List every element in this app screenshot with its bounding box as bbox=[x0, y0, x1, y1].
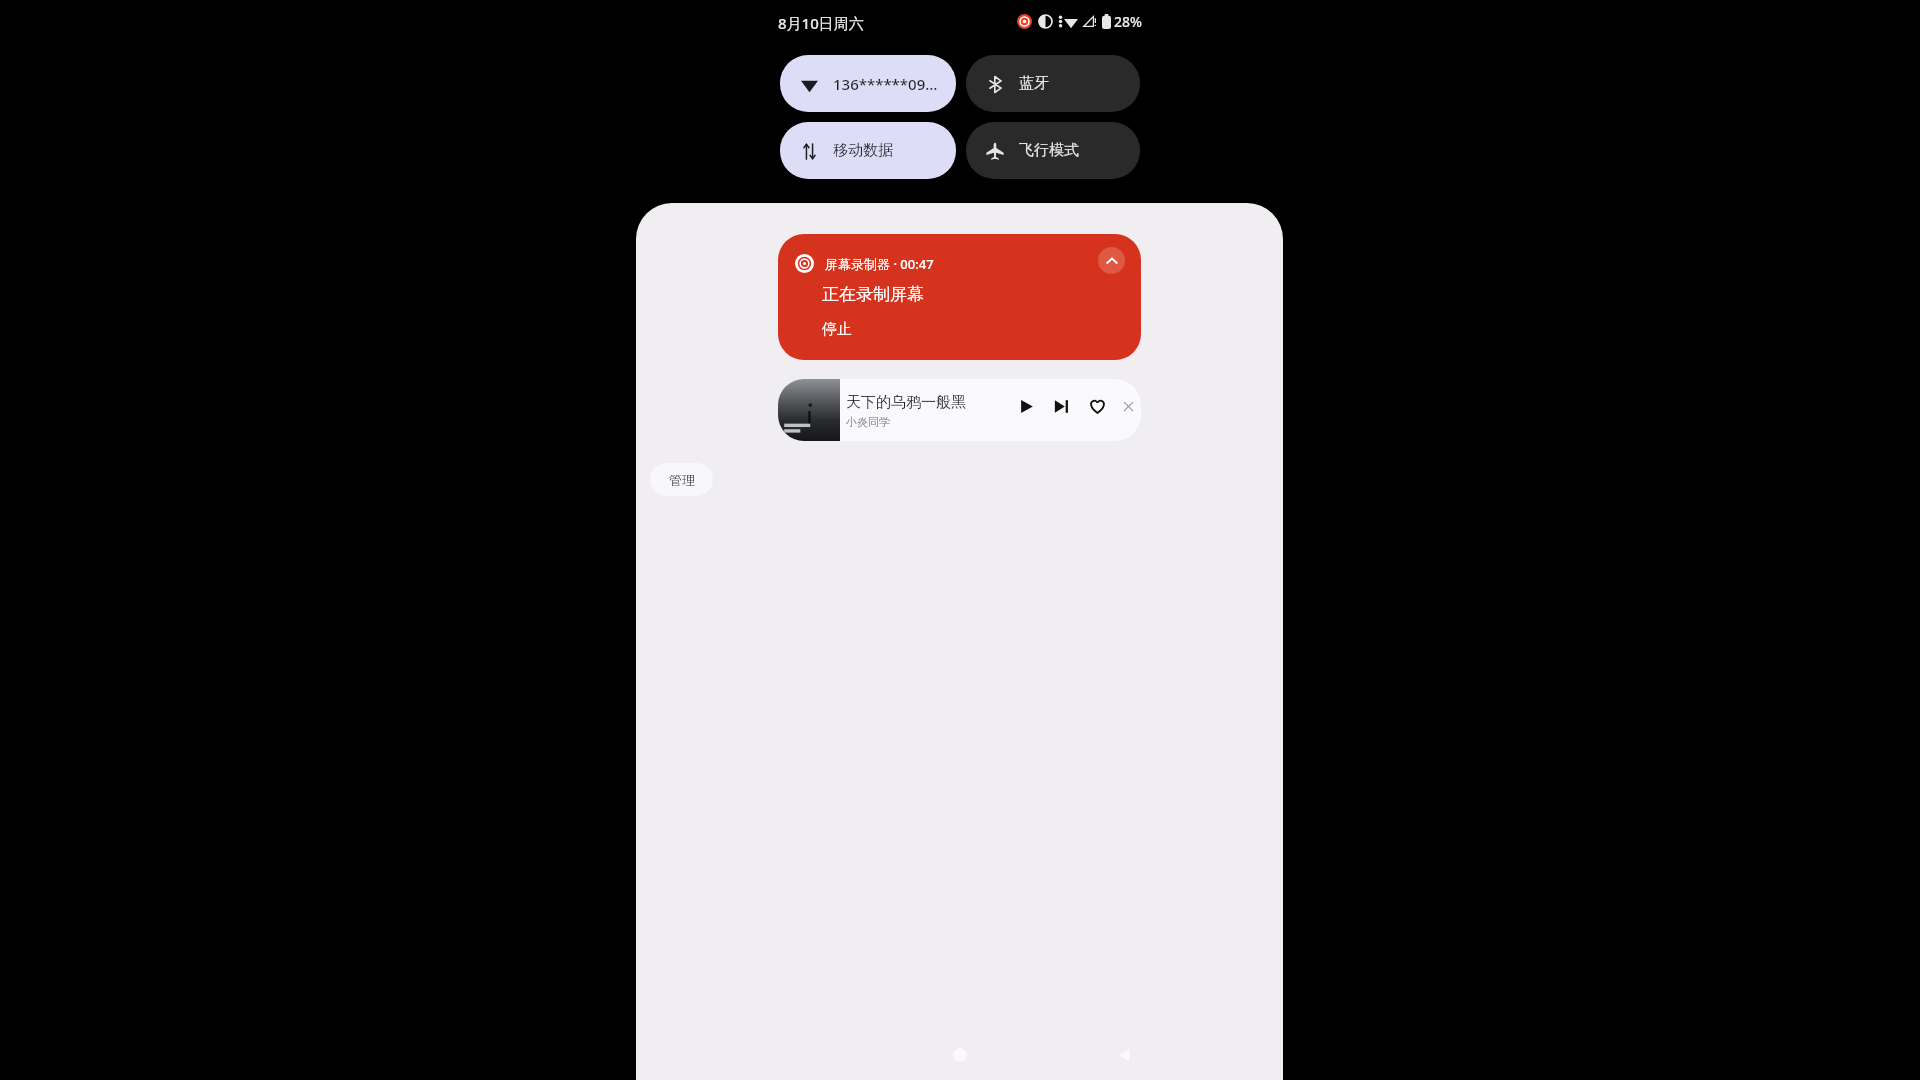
staticText: 停止 bbox=[822, 320, 852, 339]
staticText: 管理 bbox=[669, 472, 695, 488]
button[interactable]: 管理 bbox=[650, 463, 713, 496]
button[interactable]: 移动数据 bbox=[780, 122, 956, 179]
staticText: 小炎同学 bbox=[846, 415, 890, 429]
staticText: 136******09的H.. bbox=[833, 74, 944, 94]
button[interactable]: 关闭 bbox=[1122, 400, 1135, 413]
staticText: 28% bbox=[1114, 12, 1142, 31]
button[interactable]: 播放 bbox=[1018, 398, 1035, 415]
staticText: 移动数据 bbox=[833, 141, 893, 160]
button[interactable]: 飞行模式 bbox=[966, 122, 1140, 179]
staticText: 屏幕录制器 · 00:47 bbox=[825, 255, 934, 273]
button[interactable]: 屏幕录制器 · 00:47 bbox=[778, 234, 1141, 360]
button[interactable]: 收藏 bbox=[1088, 397, 1106, 415]
staticText: 8月10日周六 bbox=[778, 13, 864, 33]
staticText: 正在录制屏幕 bbox=[822, 284, 924, 305]
button[interactable]: 136******09的H.. bbox=[780, 55, 956, 112]
staticText: 蓝牙 bbox=[1019, 74, 1049, 93]
button[interactable]: 主屏幕 bbox=[940, 1035, 980, 1075]
button[interactable]: 收起 bbox=[1098, 247, 1125, 274]
staticText: 天下的乌鸦一般黑 bbox=[846, 393, 966, 412]
button[interactable]: 天下的乌鸦一般黑 bbox=[778, 379, 1141, 441]
staticText: 飞行模式 bbox=[1019, 141, 1079, 160]
button[interactable]: 停止 bbox=[822, 320, 852, 339]
button[interactable]: 蓝牙 bbox=[966, 55, 1140, 112]
button[interactable]: 下一首 bbox=[1053, 398, 1070, 415]
